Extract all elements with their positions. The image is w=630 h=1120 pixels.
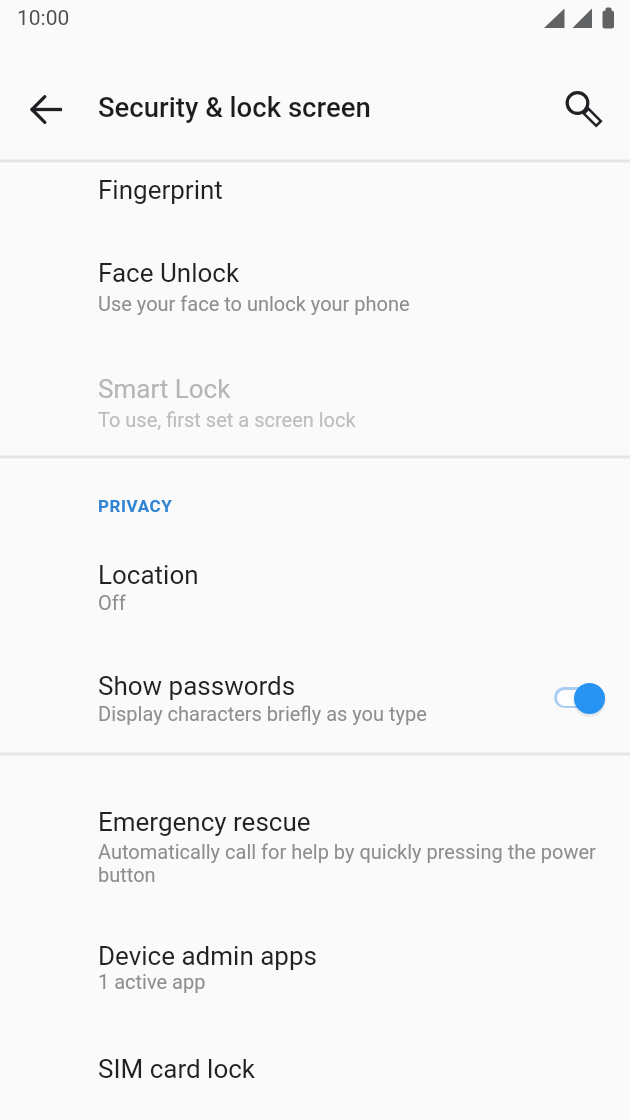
staticText: SIM card lock bbox=[98, 1054, 256, 1084]
staticText: Use your face to unlock your phone bbox=[98, 292, 410, 315]
staticText: PRIVACY bbox=[98, 496, 173, 516]
staticText: Off bbox=[98, 591, 126, 614]
staticText: Fingerprint bbox=[98, 175, 223, 205]
staticText: Display characters briefly as you type bbox=[98, 702, 427, 725]
staticText: Show passwords bbox=[98, 671, 296, 701]
button[interactable] bbox=[554, 79, 602, 127]
button[interactable]: SIM card lock bbox=[0, 1020, 630, 1120]
staticText: To use, first set a screen lock bbox=[98, 408, 356, 431]
button[interactable]: Location bbox=[0, 534, 630, 640]
staticText: Smart Lock bbox=[98, 374, 231, 404]
staticText: 1 active app bbox=[98, 970, 206, 993]
staticText: 10:00 bbox=[17, 6, 70, 31]
button[interactable]: Emergency rescue bbox=[0, 756, 630, 915]
staticText: Face Unlock bbox=[98, 258, 240, 288]
button[interactable]: Fingerprint bbox=[0, 162, 630, 232]
staticText: Security & lock screen bbox=[98, 91, 371, 123]
staticText: Device admin apps bbox=[98, 941, 317, 971]
button[interactable] bbox=[23, 86, 71, 134]
button[interactable]: Smart Lock bbox=[0, 344, 630, 456]
button[interactable]: Device admin apps bbox=[0, 915, 630, 1020]
button[interactable]: Face Unlock bbox=[0, 232, 630, 344]
staticText: Automatically call for help by quickly p… bbox=[98, 840, 596, 886]
button[interactable]: Show passwords bbox=[0, 640, 630, 753]
staticText: Location bbox=[98, 560, 199, 590]
staticText: Emergency rescue bbox=[98, 807, 311, 837]
